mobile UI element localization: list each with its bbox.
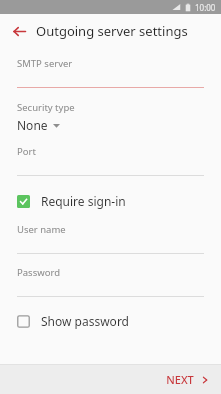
- button[interactable]: Show password: [0, 310, 221, 332]
- button[interactable]: None: [0, 117, 221, 133]
- button[interactable]: Require sign-in: [0, 190, 221, 212]
- staticText: SMTP server: [17, 57, 73, 70]
- staticText: Outgoing server settings: [36, 22, 188, 40]
- staticText: 10:00: [195, 2, 216, 13]
- staticText: Port: [17, 145, 36, 158]
- staticText: Security type: [17, 101, 75, 114]
- staticText: NEXT: [166, 372, 194, 387]
- staticText: Show password: [41, 313, 129, 329]
- staticText: None: [17, 117, 48, 133]
- staticText: Password: [17, 266, 60, 279]
- button[interactable]: NEXT: [154, 366, 221, 393]
- staticText: User name: [17, 223, 66, 236]
- staticText: Require sign-in: [41, 193, 126, 209]
- button[interactable]: Back: [8, 20, 30, 42]
